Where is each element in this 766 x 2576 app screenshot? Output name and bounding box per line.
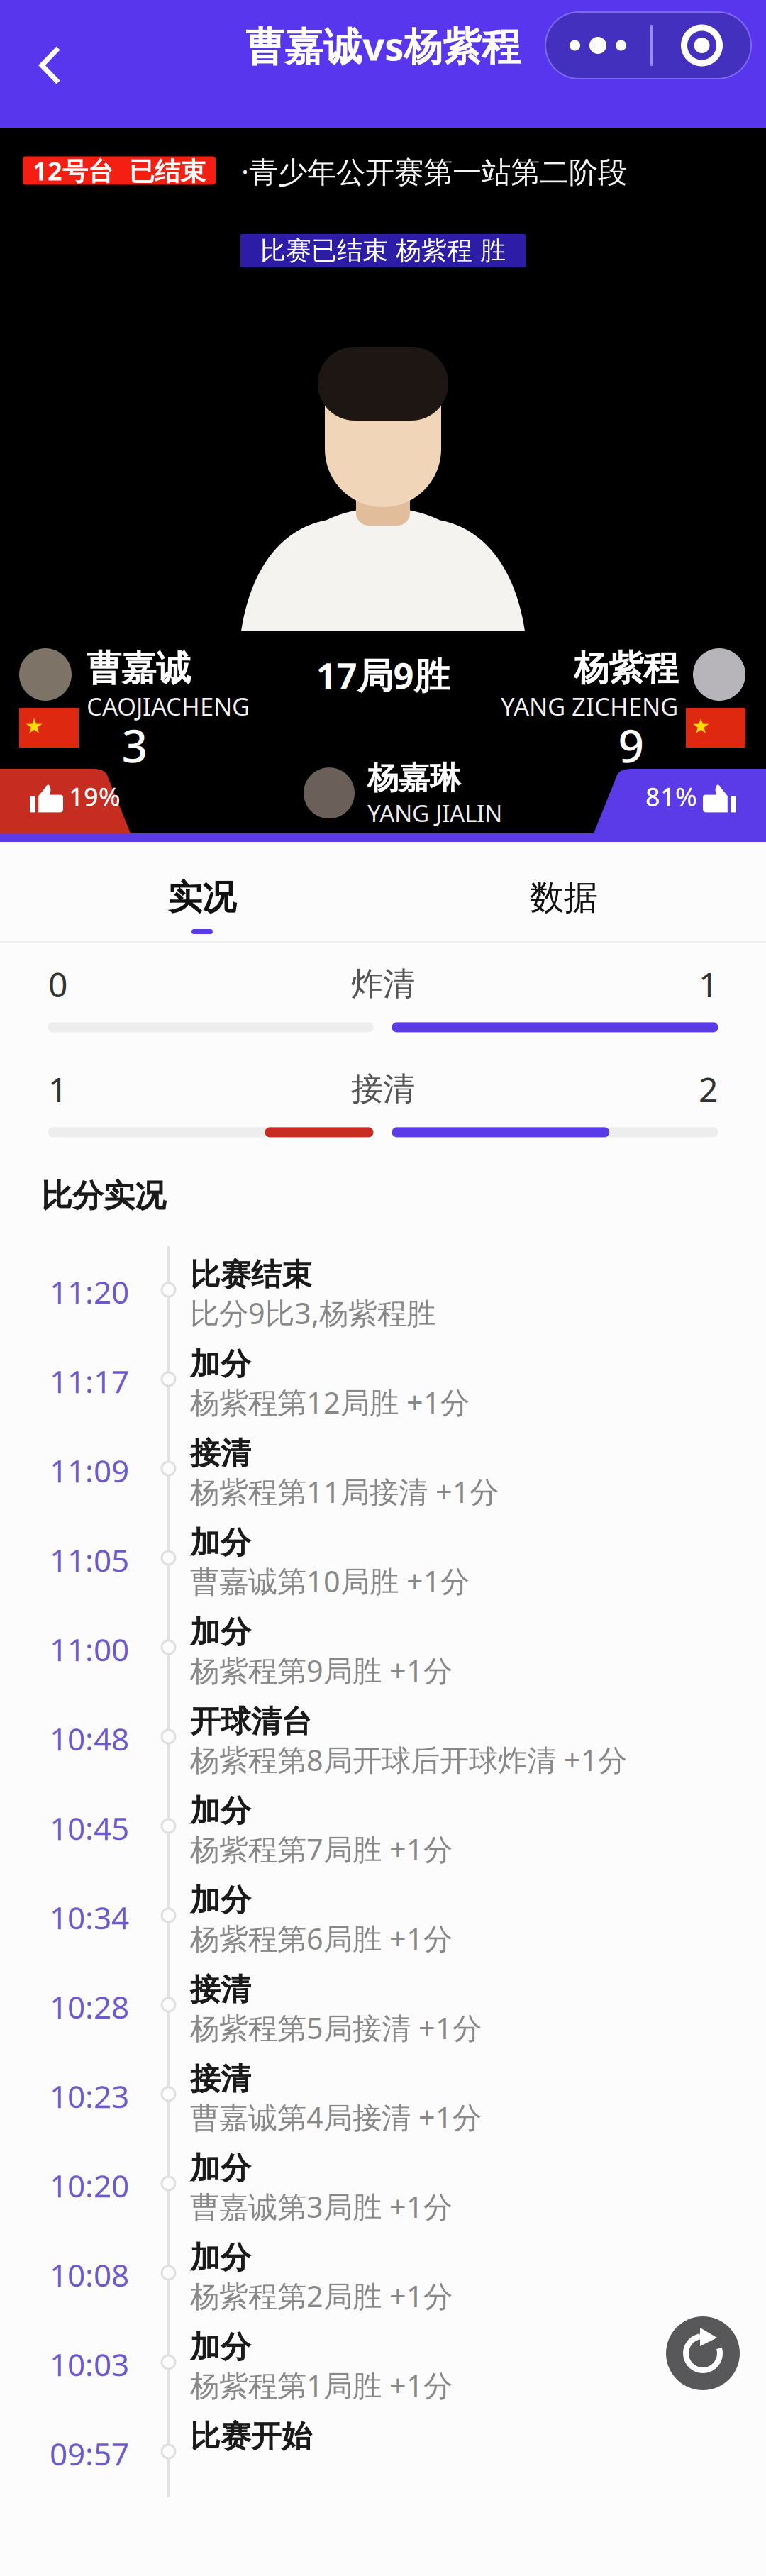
staticText: 接清 — [190, 2060, 251, 2098]
staticText: 09:57 — [50, 2433, 129, 2474]
staticText: 接清 — [190, 1435, 251, 1472]
staticText: 杨紫程第7局胜 +1分 — [190, 1829, 453, 1868]
staticText: 杨紫程第9局胜 +1分 — [190, 1651, 453, 1690]
staticText: 3 — [122, 715, 148, 775]
staticText: 1 — [699, 961, 718, 1007]
staticText: 数据 — [530, 877, 598, 918]
staticText: 比赛开始 — [190, 2418, 312, 2455]
staticText: 加分 — [190, 1882, 251, 1919]
staticText: 10:48 — [50, 1718, 129, 1759]
staticText: 接清 — [351, 1069, 415, 1109]
staticText: 加分 — [190, 1345, 251, 1383]
staticText: 10:34 — [50, 1897, 129, 1938]
staticText: ★ — [692, 714, 710, 738]
staticText: 11:09 — [50, 1450, 129, 1491]
staticText: 2 — [699, 1066, 718, 1112]
staticText: 10:28 — [50, 1986, 129, 2027]
staticText: 加分 — [190, 1524, 251, 1561]
staticText: CAOJIACHENG — [87, 690, 250, 722]
staticText: 10:08 — [50, 2254, 129, 2295]
staticText: YANG ZICHENG — [501, 690, 678, 722]
staticText: 杨紫程 — [574, 647, 678, 690]
staticText: 曹嘉诚第3局胜 +1分 — [190, 2187, 453, 2226]
staticText: 曹嘉诚第4局接清 +1分 — [190, 2098, 482, 2136]
staticText: 比分9比3,杨紫程胜 — [190, 1293, 435, 1332]
staticText: 81% — [645, 779, 697, 813]
staticText: 10:45 — [50, 1807, 129, 1849]
staticText: 杨紫程第2局胜 +1分 — [190, 2276, 453, 2315]
staticText: 加分 — [190, 1614, 251, 1651]
staticText: 11:00 — [50, 1628, 129, 1670]
button[interactable]: Refresh — [666, 2316, 740, 2390]
staticText: 比赛已结束 杨紫程 胜 — [260, 235, 506, 266]
button[interactable]: 实况 — [21, 842, 383, 941]
staticText: 11:05 — [50, 1539, 129, 1580]
staticText: 比分实况 — [41, 1177, 166, 1215]
staticText: 19% — [69, 779, 121, 813]
staticText: 接清 — [190, 1971, 251, 2008]
button[interactable]: Back — [26, 34, 72, 96]
staticText: 曹嘉诚vs杨紫程 — [245, 20, 521, 71]
staticText: 杨紫程第1局胜 +1分 — [190, 2366, 453, 2405]
staticText: 9 — [618, 715, 644, 775]
staticText: 11:17 — [50, 1360, 129, 1402]
staticText: 杨紫程第12局胜 +1分 — [190, 1383, 470, 1422]
staticText: 杨紫程第6局胜 +1分 — [190, 1919, 453, 1958]
staticText: ★ — [25, 714, 43, 738]
staticText: YANG JIALIN — [367, 797, 502, 829]
staticText: 0 — [48, 961, 67, 1007]
staticText: 加分 — [190, 2239, 251, 2276]
button[interactable]: More options — [545, 12, 751, 79]
staticText: 比赛结束 — [190, 1256, 312, 1293]
staticText: 10:20 — [50, 2165, 129, 2206]
staticText: 杨紫程第11局接清 +1分 — [190, 1472, 499, 1511]
staticText: 杨嘉琳 — [367, 759, 461, 797]
staticText: 加分 — [190, 1792, 251, 1829]
staticText: 实况 — [168, 877, 236, 918]
staticText: ·青少年公开赛第一站第二阶段 — [241, 152, 627, 191]
staticText: 10:03 — [50, 2343, 129, 2385]
staticText: 曹嘉诚 — [87, 647, 191, 690]
staticText: 12号台 已结束 — [33, 154, 206, 187]
staticText: 炸清 — [351, 964, 415, 1004]
staticText: 杨紫程第5局接清 +1分 — [190, 2008, 482, 2047]
staticText: 加分 — [190, 2328, 251, 2366]
staticText: 开球清台 — [190, 1703, 312, 1740]
staticText: 17局9胜 — [316, 651, 450, 699]
staticText: 曹嘉诚第10局胜 +1分 — [190, 1561, 470, 1600]
staticText: 杨紫程第8局开球后开球炸清 +1分 — [190, 1740, 627, 1779]
staticText: 加分 — [190, 2150, 251, 2187]
staticText: 11:20 — [50, 1271, 129, 1312]
button[interactable]: 数据 — [383, 842, 745, 941]
staticText: 1 — [48, 1066, 67, 1112]
staticText: 10:23 — [50, 2075, 129, 2117]
